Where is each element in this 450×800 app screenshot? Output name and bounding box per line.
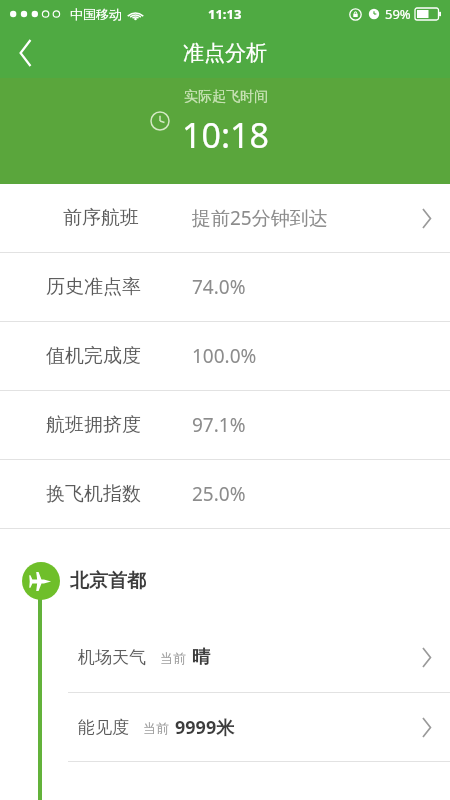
staticText: 100.0% bbox=[192, 343, 257, 369]
staticText: 前序航班 bbox=[63, 206, 139, 230]
staticText: 机场天气 bbox=[78, 647, 146, 668]
staticText: 值机完成度 bbox=[46, 344, 141, 368]
staticText: 实际起飞时间 bbox=[184, 88, 268, 106]
button[interactable]: 历史准点率 bbox=[0, 253, 450, 321]
staticText: 10:18 bbox=[182, 112, 269, 158]
staticText: 74.0% bbox=[192, 274, 246, 300]
staticText: 换飞机指数 bbox=[46, 482, 141, 506]
button[interactable]: 能见度 bbox=[0, 693, 450, 761]
button[interactable]: Back bbox=[0, 28, 52, 78]
staticText: 11:13 bbox=[208, 5, 242, 23]
staticText: 准点分析 bbox=[183, 40, 267, 66]
staticText: 9999米 bbox=[175, 715, 235, 740]
staticText: 97.1% bbox=[192, 412, 246, 438]
staticText: 晴 bbox=[192, 646, 210, 669]
staticText: 航班拥挤度 bbox=[46, 413, 141, 437]
button[interactable]: 机场天气 bbox=[0, 623, 450, 691]
staticText: 提前25分钟到达 bbox=[192, 205, 328, 231]
staticText: 59% bbox=[385, 5, 411, 23]
staticText: 能见度 bbox=[78, 717, 129, 738]
staticText: 中国移动 bbox=[70, 6, 122, 22]
staticText: 历史准点率 bbox=[46, 275, 141, 299]
staticText: 当前 bbox=[143, 720, 169, 736]
staticText: 25.0% bbox=[192, 481, 246, 507]
staticText: 当前 bbox=[160, 650, 186, 666]
staticText: 北京首都 bbox=[70, 569, 146, 593]
button[interactable]: 换飞机指数 bbox=[0, 460, 450, 528]
button[interactable]: 前序航班 bbox=[0, 184, 450, 252]
button[interactable]: 值机完成度 bbox=[0, 322, 450, 390]
button[interactable]: 航班拥挤度 bbox=[0, 391, 450, 459]
